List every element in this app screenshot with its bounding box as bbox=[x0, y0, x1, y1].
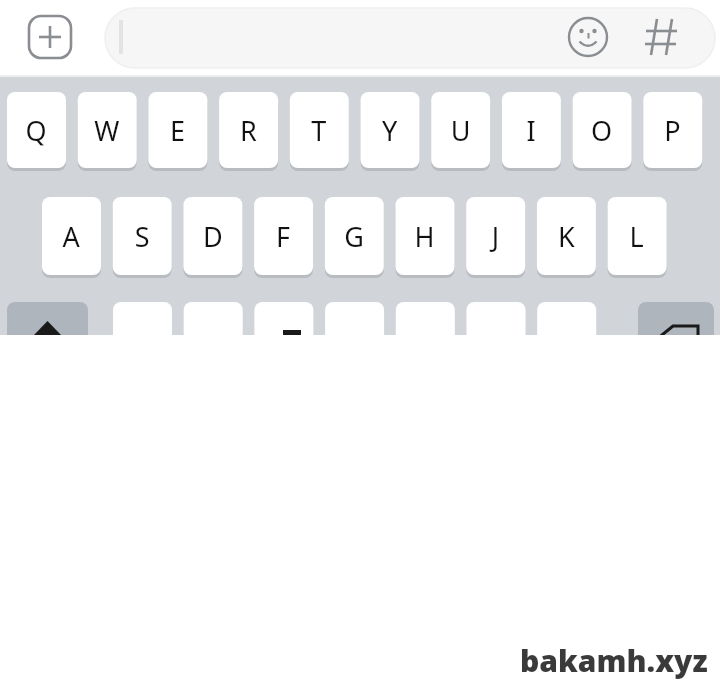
button[interactable]: M bbox=[537, 302, 596, 335]
button[interactable]: R bbox=[219, 92, 278, 168]
button[interactable]: W bbox=[77, 92, 136, 168]
button[interactable]: J bbox=[466, 197, 525, 275]
button[interactable]: C bbox=[254, 302, 313, 335]
button[interactable]: Emoji bbox=[568, 17, 608, 57]
button[interactable]: G bbox=[324, 197, 383, 275]
button[interactable]: T bbox=[289, 92, 348, 168]
button[interactable]: D bbox=[183, 197, 242, 275]
button[interactable]: U bbox=[431, 92, 490, 168]
button[interactable]: V bbox=[325, 302, 384, 335]
button[interactable]: F bbox=[254, 197, 313, 275]
button[interactable]: Backspace bbox=[638, 302, 714, 335]
button[interactable]: Shift bbox=[7, 302, 88, 335]
button[interactable]: K bbox=[536, 197, 595, 275]
button[interactable]: Add attachment bbox=[29, 16, 71, 58]
button[interactable]: E bbox=[148, 92, 207, 168]
button[interactable]: X bbox=[183, 302, 242, 335]
button[interactable]: B bbox=[395, 302, 454, 335]
button[interactable]: O bbox=[572, 92, 631, 168]
button[interactable]: Q bbox=[7, 92, 66, 168]
button[interactable]: Z bbox=[113, 302, 172, 335]
button[interactable]: Hashtag bbox=[641, 17, 681, 57]
button[interactable]: N bbox=[466, 302, 525, 335]
button[interactable]: L bbox=[607, 197, 666, 275]
button[interactable]: I bbox=[501, 92, 560, 168]
button[interactable]: P bbox=[643, 92, 702, 168]
button[interactable]: S bbox=[112, 197, 171, 275]
button[interactable]: Y bbox=[360, 92, 419, 168]
button[interactable]: A bbox=[42, 197, 101, 275]
button[interactable]: Message input bbox=[105, 8, 715, 68]
button[interactable]: H bbox=[395, 197, 454, 275]
